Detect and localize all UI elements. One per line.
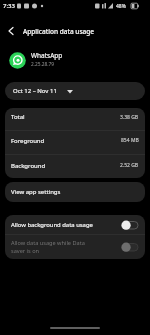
staticText: 7:33 (3, 2, 15, 10)
staticText: Oct 12 – Nov 11 (13, 87, 57, 95)
staticText: Application data usage (23, 27, 95, 36)
staticText: 854 MB (121, 137, 139, 144)
button[interactable]: Allow background data usage (5, 215, 145, 234)
button[interactable]: Foreground (5, 131, 145, 154)
button[interactable] (121, 242, 139, 252)
staticText: 2.25.28.79 (31, 61, 55, 68)
staticText: 3.38 GB (120, 114, 139, 121)
staticText: Foreground (11, 137, 45, 145)
staticText: saver is on (11, 247, 39, 255)
button[interactable]: Oct 12 – Nov 11 (5, 82, 145, 100)
button[interactable] (4, 24, 18, 38)
staticText: Background (11, 162, 46, 170)
staticText: WhatsApp (31, 51, 63, 60)
staticText: Total (11, 113, 25, 121)
button[interactable]: Total (5, 108, 145, 130)
staticText: View app settings (11, 188, 61, 196)
button[interactable] (121, 220, 139, 230)
staticText: 2.52 GB (120, 162, 139, 169)
button[interactable]: Background (5, 155, 145, 178)
button[interactable]: Allow data usage while Data (5, 235, 145, 259)
button[interactable]: View app settings (5, 182, 145, 202)
staticText: 48% (116, 3, 126, 10)
staticText: Allow background data usage (11, 221, 93, 229)
staticText: Allow data usage while Data (11, 239, 85, 247)
